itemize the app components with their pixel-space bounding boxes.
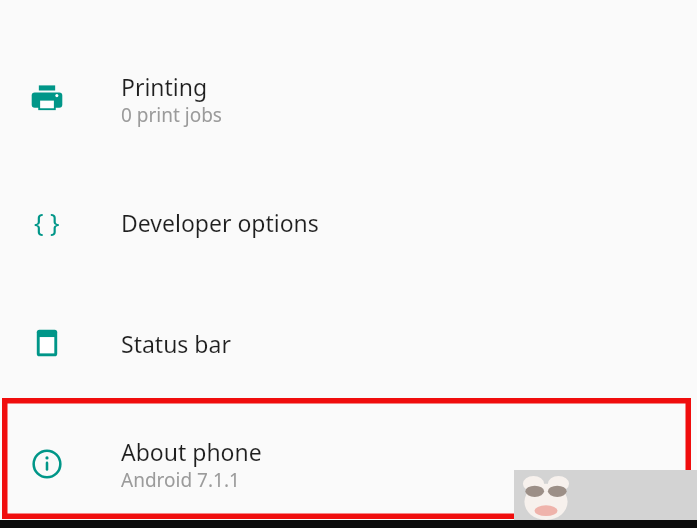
button[interactable]: About phone	[0, 424, 697, 504]
staticText: Printing	[121, 71, 208, 102]
other: Developer options	[30, 205, 64, 239]
button[interactable]: Developer options	[0, 182, 697, 262]
button[interactable]: Printing	[0, 59, 697, 139]
other: Status bar	[30, 326, 64, 360]
other: About phone	[30, 447, 64, 481]
staticText: About phone	[121, 436, 262, 467]
button[interactable]: Status bar	[0, 303, 697, 383]
other: Printing	[30, 82, 64, 116]
staticText: Android 7.1.1	[121, 467, 240, 493]
staticText: { }	[34, 205, 60, 239]
staticText: Developer options	[121, 207, 319, 238]
staticText: Status bar	[121, 328, 231, 359]
staticText: 0 print jobs	[121, 102, 222, 128]
